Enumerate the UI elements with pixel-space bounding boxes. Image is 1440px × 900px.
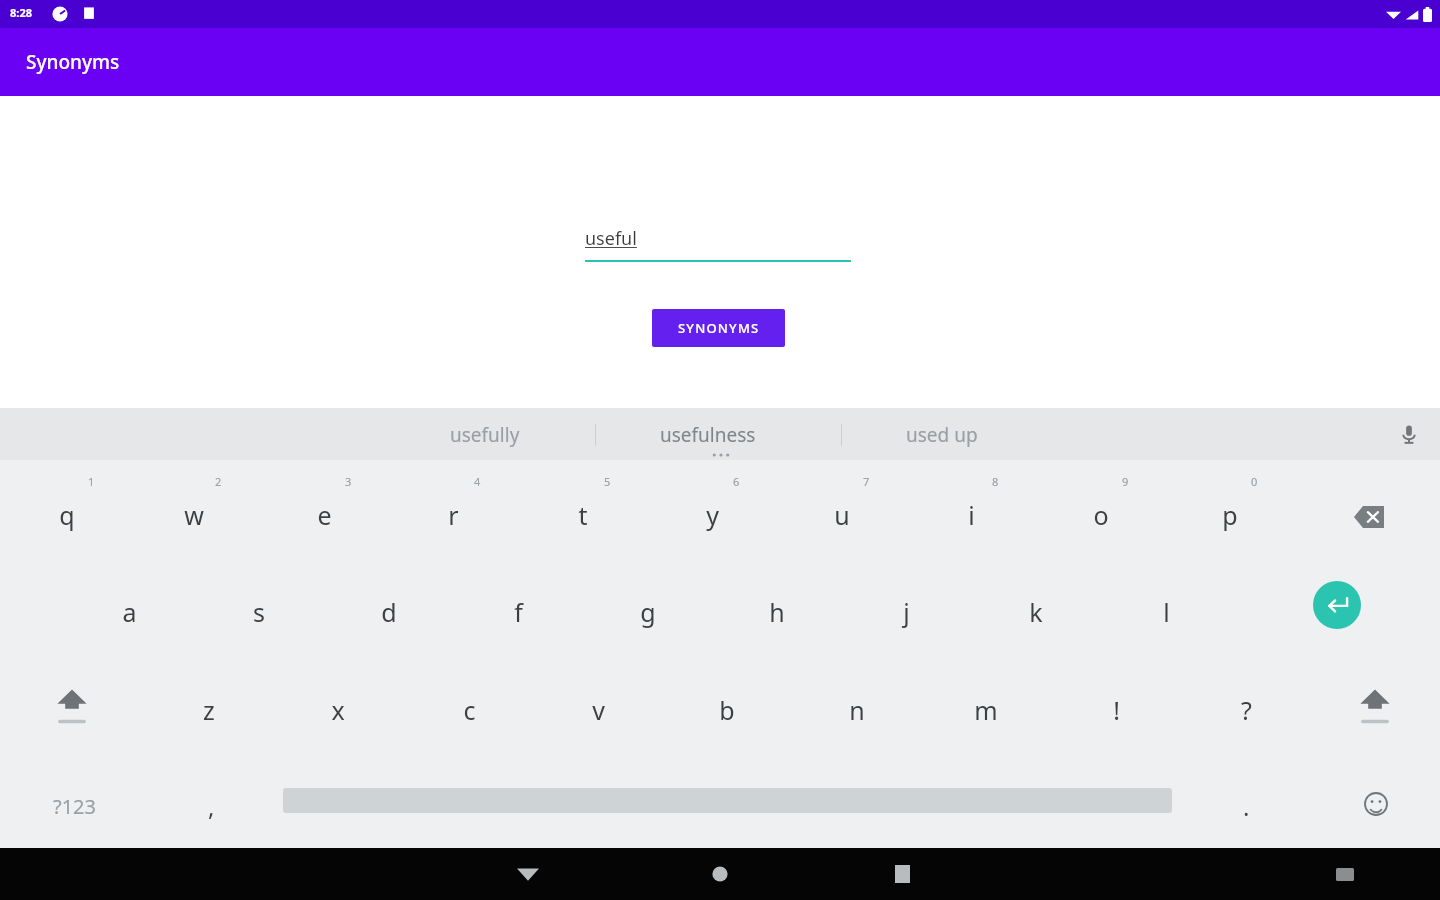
staticText: ? (1241, 693, 1252, 727)
button[interactable]: j (874, 577, 938, 639)
button[interactable]: ? (1214, 675, 1278, 737)
button[interactable]: s (227, 577, 291, 639)
staticText: z (203, 693, 215, 727)
button[interactable]: 0 (1198, 480, 1262, 542)
staticText: 0 (1251, 474, 1258, 489)
staticText: i (968, 498, 975, 532)
staticText: s (253, 595, 265, 629)
button[interactable]: 2 (162, 480, 226, 542)
button[interactable]: ! (1084, 675, 1148, 737)
button[interactable]: f (486, 577, 550, 639)
button[interactable]: Backspace (1337, 489, 1401, 545)
button[interactable]: v (566, 675, 630, 737)
staticText: b (719, 693, 735, 727)
staticText: e (317, 498, 332, 532)
staticText: 4 (474, 474, 481, 489)
staticText: usefulness (660, 422, 756, 448)
staticText: f (514, 595, 523, 629)
staticText: g (640, 595, 656, 629)
button[interactable]: Shift (40, 675, 104, 737)
button[interactable]: . (1215, 780, 1277, 832)
button[interactable]: 5 (551, 480, 615, 542)
staticText: x (331, 693, 345, 727)
button[interactable]: x (306, 675, 370, 737)
staticText: v (592, 693, 605, 727)
button[interactable]: n (825, 675, 889, 737)
staticText: 2 (215, 474, 222, 489)
staticText: a (122, 595, 137, 629)
button[interactable]: b (695, 675, 759, 737)
button[interactable]: Recents (888, 860, 916, 888)
staticText: y (706, 498, 719, 532)
button[interactable]: 8 (939, 480, 1003, 542)
button[interactable]: , (180, 780, 242, 832)
button[interactable]: Home (706, 860, 734, 888)
button[interactable]: 9 (1069, 480, 1133, 542)
button[interactable]: Enter (1313, 581, 1361, 629)
button[interactable]: l (1134, 577, 1198, 639)
button[interactable]: 1 (35, 480, 99, 542)
staticText: 6 (733, 474, 740, 489)
button[interactable]: g (616, 577, 680, 639)
staticText: , (208, 790, 215, 823)
button[interactable]: used up (906, 422, 978, 448)
staticText: l (1163, 595, 1170, 629)
staticText: 3 (345, 474, 352, 489)
button[interactable]: Voice input (1396, 421, 1422, 447)
staticText: ! (1113, 693, 1120, 727)
staticText: 8 (992, 474, 999, 489)
staticText: 7 (863, 474, 870, 489)
button[interactable]: 3 (292, 480, 356, 542)
staticText: h (769, 595, 785, 629)
staticText: 8:28 (10, 5, 32, 20)
button[interactable]: c (437, 675, 501, 737)
staticText: 1 (88, 474, 95, 489)
staticText: ?123 (53, 793, 96, 820)
button[interactable]: Shift (1343, 675, 1407, 737)
staticText: Synonyms (26, 49, 120, 75)
staticText: . (1243, 790, 1250, 823)
button[interactable]: 4 (421, 480, 485, 542)
staticText: 9 (1122, 474, 1129, 489)
staticText: p (1222, 498, 1238, 532)
button[interactable]: SYNONYMS (652, 309, 785, 347)
staticText: n (849, 693, 865, 727)
staticText: u (834, 498, 850, 532)
button[interactable]: m (954, 675, 1018, 737)
button[interactable]: z (177, 675, 241, 737)
staticText: m (974, 693, 998, 727)
staticText: d (381, 595, 397, 629)
button[interactable]: Emoji (1350, 778, 1402, 830)
staticText: k (1029, 595, 1043, 629)
button[interactable]: 6 (680, 480, 744, 542)
staticText: w (184, 498, 204, 532)
button[interactable]: ?123 (28, 780, 120, 832)
staticText: o (1093, 498, 1109, 532)
button[interactable]: k (1004, 577, 1068, 639)
button[interactable]: d (357, 577, 421, 639)
button[interactable]: h (745, 577, 809, 639)
button[interactable]: Switch keyboard (1332, 861, 1358, 887)
button[interactable]: Hide keyboard (514, 860, 542, 888)
staticText: c (463, 693, 476, 727)
staticText: t (578, 498, 588, 532)
staticText: q (59, 498, 75, 532)
button[interactable]: 7 (810, 480, 874, 542)
staticText: j (903, 595, 910, 629)
staticText: useful (585, 226, 637, 251)
staticText: r (448, 498, 459, 532)
staticText: SYNONYMS (678, 319, 760, 337)
button[interactable]: usefulness (660, 422, 756, 448)
button[interactable]: a (97, 577, 161, 639)
button[interactable]: usefully (450, 422, 520, 448)
staticText: 5 (604, 474, 611, 489)
